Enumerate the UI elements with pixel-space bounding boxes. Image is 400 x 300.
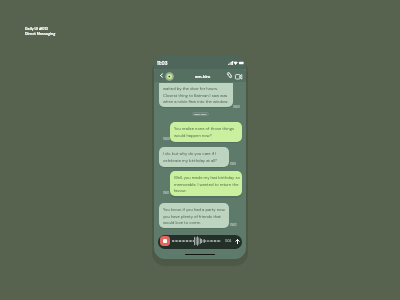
staticText: I do, but why do you care if I celebrate…: [163, 151, 218, 163]
staticText: 01:02: [230, 223, 237, 227]
staticText: 0:04: [225, 239, 232, 243]
button[interactable]: Back: [157, 71, 165, 79]
staticText: 01:00: [233, 105, 240, 109]
button[interactable]: Well, you made my last birthday so memor…: [170, 171, 242, 196]
staticText: Daily UI #013: [25, 26, 48, 31]
button[interactable]: I do, but why do you care if I celebrate…: [159, 147, 229, 167]
button[interactable]: You realize none of those things would h…: [170, 122, 242, 142]
staticText: You realize none of those things would h…: [174, 126, 234, 138]
staticText: 01:00: [163, 137, 170, 141]
staticText: 01:01: [163, 191, 169, 195]
button[interactable]: Video call: [235, 74, 242, 80]
button[interactable]: Stop recording: [160, 236, 170, 246]
button[interactable]: Profile: [165, 72, 174, 81]
button[interactable]: Send: [233, 237, 241, 245]
staticText: Today 01:00: [194, 113, 207, 116]
button[interactable]: You know, if you had a party now, you ha…: [159, 203, 229, 228]
button[interactable]: Call: [227, 72, 232, 78]
staticText: waited by the door for hours. Closest th…: [163, 86, 229, 104]
staticText: You know, if you had a party now, you ha…: [163, 207, 226, 225]
staticText: am.kim: [195, 74, 211, 80]
staticText: 11:03: [157, 60, 168, 66]
staticText: Direct Messaging: [25, 31, 56, 36]
button[interactable]: waited by the door for hours. Closest th…: [159, 83, 233, 107]
staticText: Well, you made my last birthday so memor…: [174, 175, 240, 193]
staticText: 01:01: [230, 162, 236, 166]
